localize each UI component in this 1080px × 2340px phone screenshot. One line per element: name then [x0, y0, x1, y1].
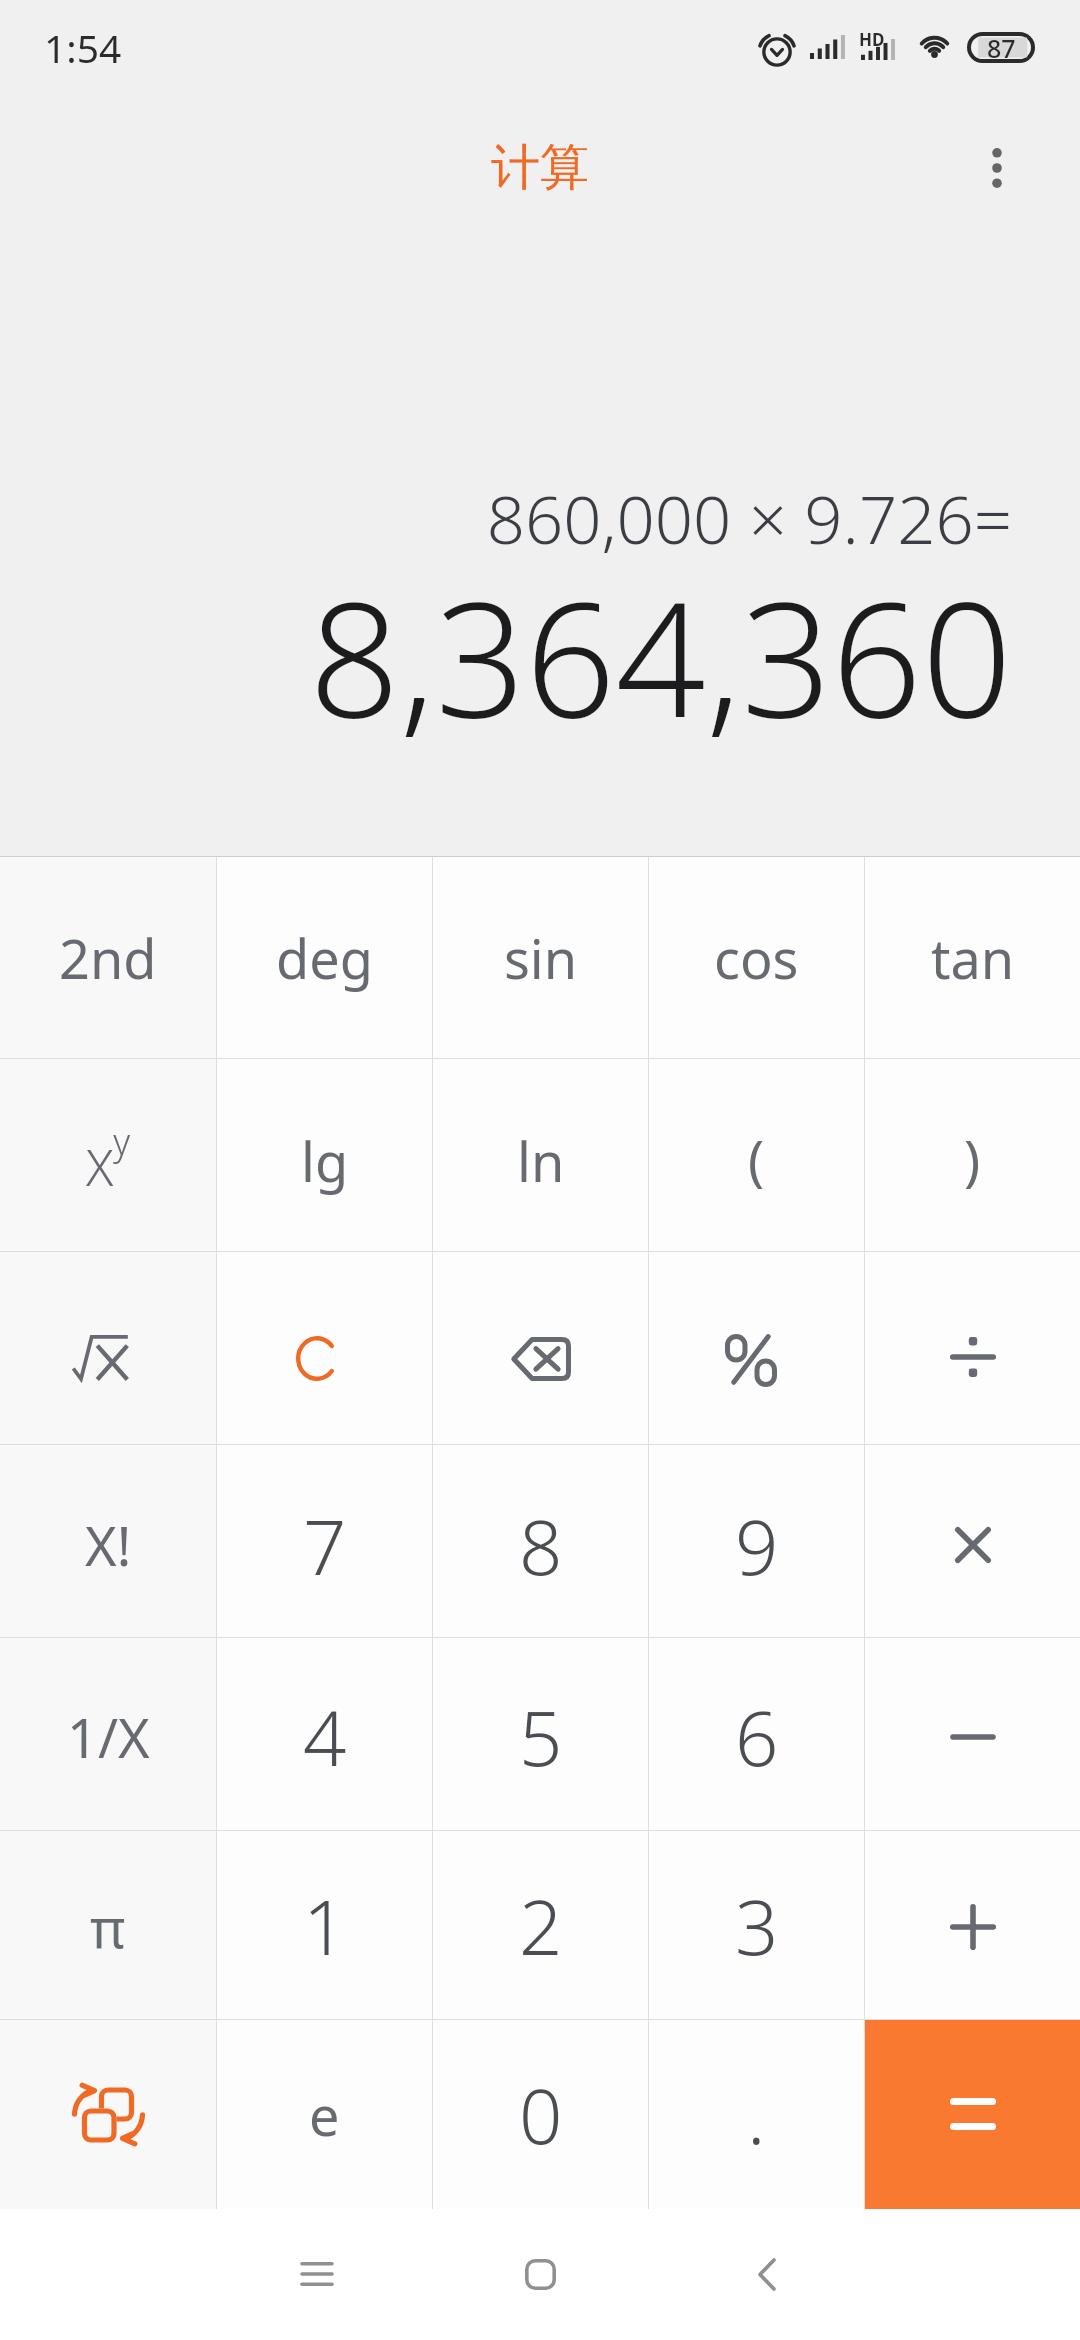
button[interactable]: Power: [0, 1059, 216, 1251]
staticText: 3: [735, 1874, 779, 1978]
staticText: 7: [303, 1494, 347, 1598]
button[interactable]: Home: [480, 2214, 600, 2334]
button[interactable]: ): [865, 1059, 1080, 1251]
staticText: 0: [519, 2063, 563, 2167]
staticText: sin: [504, 921, 578, 995]
button[interactable]: Percent: [649, 1252, 864, 1444]
button[interactable]: 1/X: [0, 1638, 216, 1830]
button[interactable]: 6: [649, 1638, 864, 1830]
staticText: 1:54: [44, 21, 122, 74]
button[interactable]: cos: [649, 857, 864, 1058]
button[interactable]: Delete: [433, 1252, 648, 1444]
button[interactable]: 1: [217, 1831, 432, 2019]
staticText: lg: [301, 1124, 349, 1198]
staticText: (: [748, 1122, 765, 1196]
button[interactable]: X!: [0, 1445, 216, 1637]
button[interactable]: .: [649, 2020, 864, 2209]
button[interactable]: Minus: [865, 1638, 1080, 1830]
button[interactable]: More options: [949, 120, 1045, 216]
button[interactable]: 9: [649, 1445, 864, 1637]
button[interactable]: π: [0, 1831, 216, 2019]
staticText: 8: [519, 1494, 563, 1598]
button[interactable]: sin: [433, 857, 648, 1058]
button[interactable]: lg: [217, 1059, 432, 1251]
staticText: 4: [303, 1685, 347, 1789]
staticText: 1: [303, 1874, 347, 1978]
button[interactable]: 0: [433, 2020, 648, 2209]
staticText: 8,364,360: [309, 548, 1012, 763]
button[interactable]: ln: [433, 1059, 648, 1251]
staticText: cos: [714, 921, 799, 995]
button[interactable]: Unit converter: [0, 2020, 216, 2209]
staticText: π: [90, 1890, 126, 1964]
staticText: 6: [735, 1685, 779, 1789]
staticText: .: [747, 2063, 766, 2167]
staticText: 860,000 × 9.726=: [486, 472, 1012, 563]
staticText: 9: [735, 1494, 779, 1598]
button[interactable]: Equals: [865, 2020, 1080, 2209]
button[interactable]: Recents: [257, 2214, 377, 2334]
button[interactable]: Square root: [0, 1252, 216, 1444]
staticText: 1/X: [67, 1700, 150, 1774]
staticText: HD: [859, 28, 885, 51]
button[interactable]: 3: [649, 1831, 864, 2019]
staticText: 2nd: [59, 921, 157, 995]
button[interactable]: deg: [217, 857, 432, 1058]
button[interactable]: Clear: [217, 1252, 432, 1444]
staticText: tan: [931, 921, 1015, 995]
staticText: 计算: [491, 137, 589, 199]
button[interactable]: e: [217, 2020, 432, 2209]
staticText: ): [964, 1122, 981, 1196]
button[interactable]: Plus: [865, 1831, 1080, 2019]
button[interactable]: 2: [433, 1831, 648, 2019]
button[interactable]: 8: [433, 1445, 648, 1637]
button[interactable]: Multiply: [865, 1445, 1080, 1637]
staticText: Xy: [86, 1117, 131, 1200]
staticText: 5: [519, 1685, 563, 1789]
staticText: e: [309, 2078, 340, 2152]
staticText: ln: [517, 1124, 565, 1198]
staticText: deg: [276, 921, 373, 995]
button[interactable]: Divide: [865, 1252, 1080, 1444]
staticText: 87: [987, 31, 1016, 62]
button[interactable]: 7: [217, 1445, 432, 1637]
button[interactable]: 2nd: [0, 857, 216, 1058]
button[interactable]: 4: [217, 1638, 432, 1830]
button[interactable]: 5: [433, 1638, 648, 1830]
button[interactable]: tan: [865, 857, 1080, 1058]
button[interactable]: Back: [707, 2214, 827, 2334]
staticText: X!: [85, 1508, 132, 1582]
button[interactable]: (: [649, 1059, 864, 1251]
staticText: 2: [519, 1874, 563, 1978]
